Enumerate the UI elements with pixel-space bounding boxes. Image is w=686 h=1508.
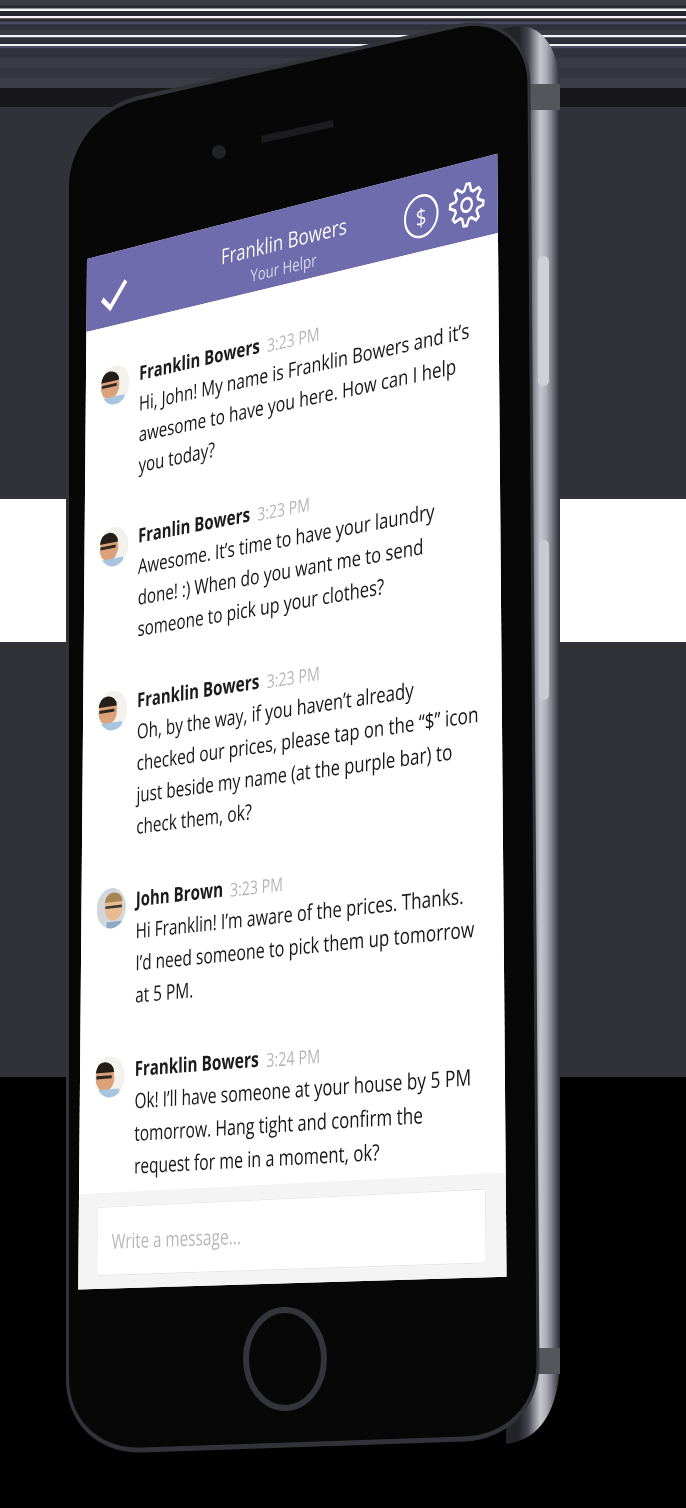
staticText: 3:24 PM [266, 1043, 321, 1073]
staticText: John Brown [136, 875, 224, 913]
staticText: 3:23 PM [267, 660, 321, 694]
staticText: Franklin Bowers [137, 667, 260, 714]
staticText: 3:23 PM [230, 871, 284, 903]
button[interactable]: Confirm request [99, 274, 128, 320]
staticText: Hi Franklin! I’m aware of the prices. Th… [135, 877, 486, 1009]
staticText: Hi, John! My name is Franklin Bowers and… [138, 312, 482, 479]
button[interactable]: Prices [403, 189, 439, 243]
button[interactable]: Franlin Bowers [84, 407, 501, 654]
staticText: Awesome. It’s time to have your laundry … [137, 487, 483, 643]
button[interactable]: Franklin Bowers [79, 978, 506, 1185]
staticText: Franklin Bowers [221, 210, 347, 270]
staticText: Franklin Bowers [139, 332, 260, 387]
button[interactable]: John Brown [80, 796, 504, 1016]
staticText: Your Helpr [250, 248, 317, 288]
staticText: Write a message... [111, 1221, 241, 1256]
button[interactable]: Franklin Bowers [85, 233, 499, 492]
staticText: 3:23 PM [257, 491, 311, 527]
staticText: Franlin Bowers [138, 500, 251, 549]
staticText: Ok! I’ll have someone at your house by 5… [134, 1060, 487, 1180]
staticText: 3:23 PM [267, 321, 320, 358]
button[interactable]: Franklin Bowers [82, 583, 503, 850]
staticText: Oh, by the way, if you haven’t already c… [136, 664, 485, 841]
button[interactable]: Settings [448, 178, 485, 232]
staticText: Franklin Bowers [135, 1044, 259, 1083]
staticText: $ [416, 199, 427, 234]
button[interactable]: Write a message... [96, 1188, 486, 1276]
